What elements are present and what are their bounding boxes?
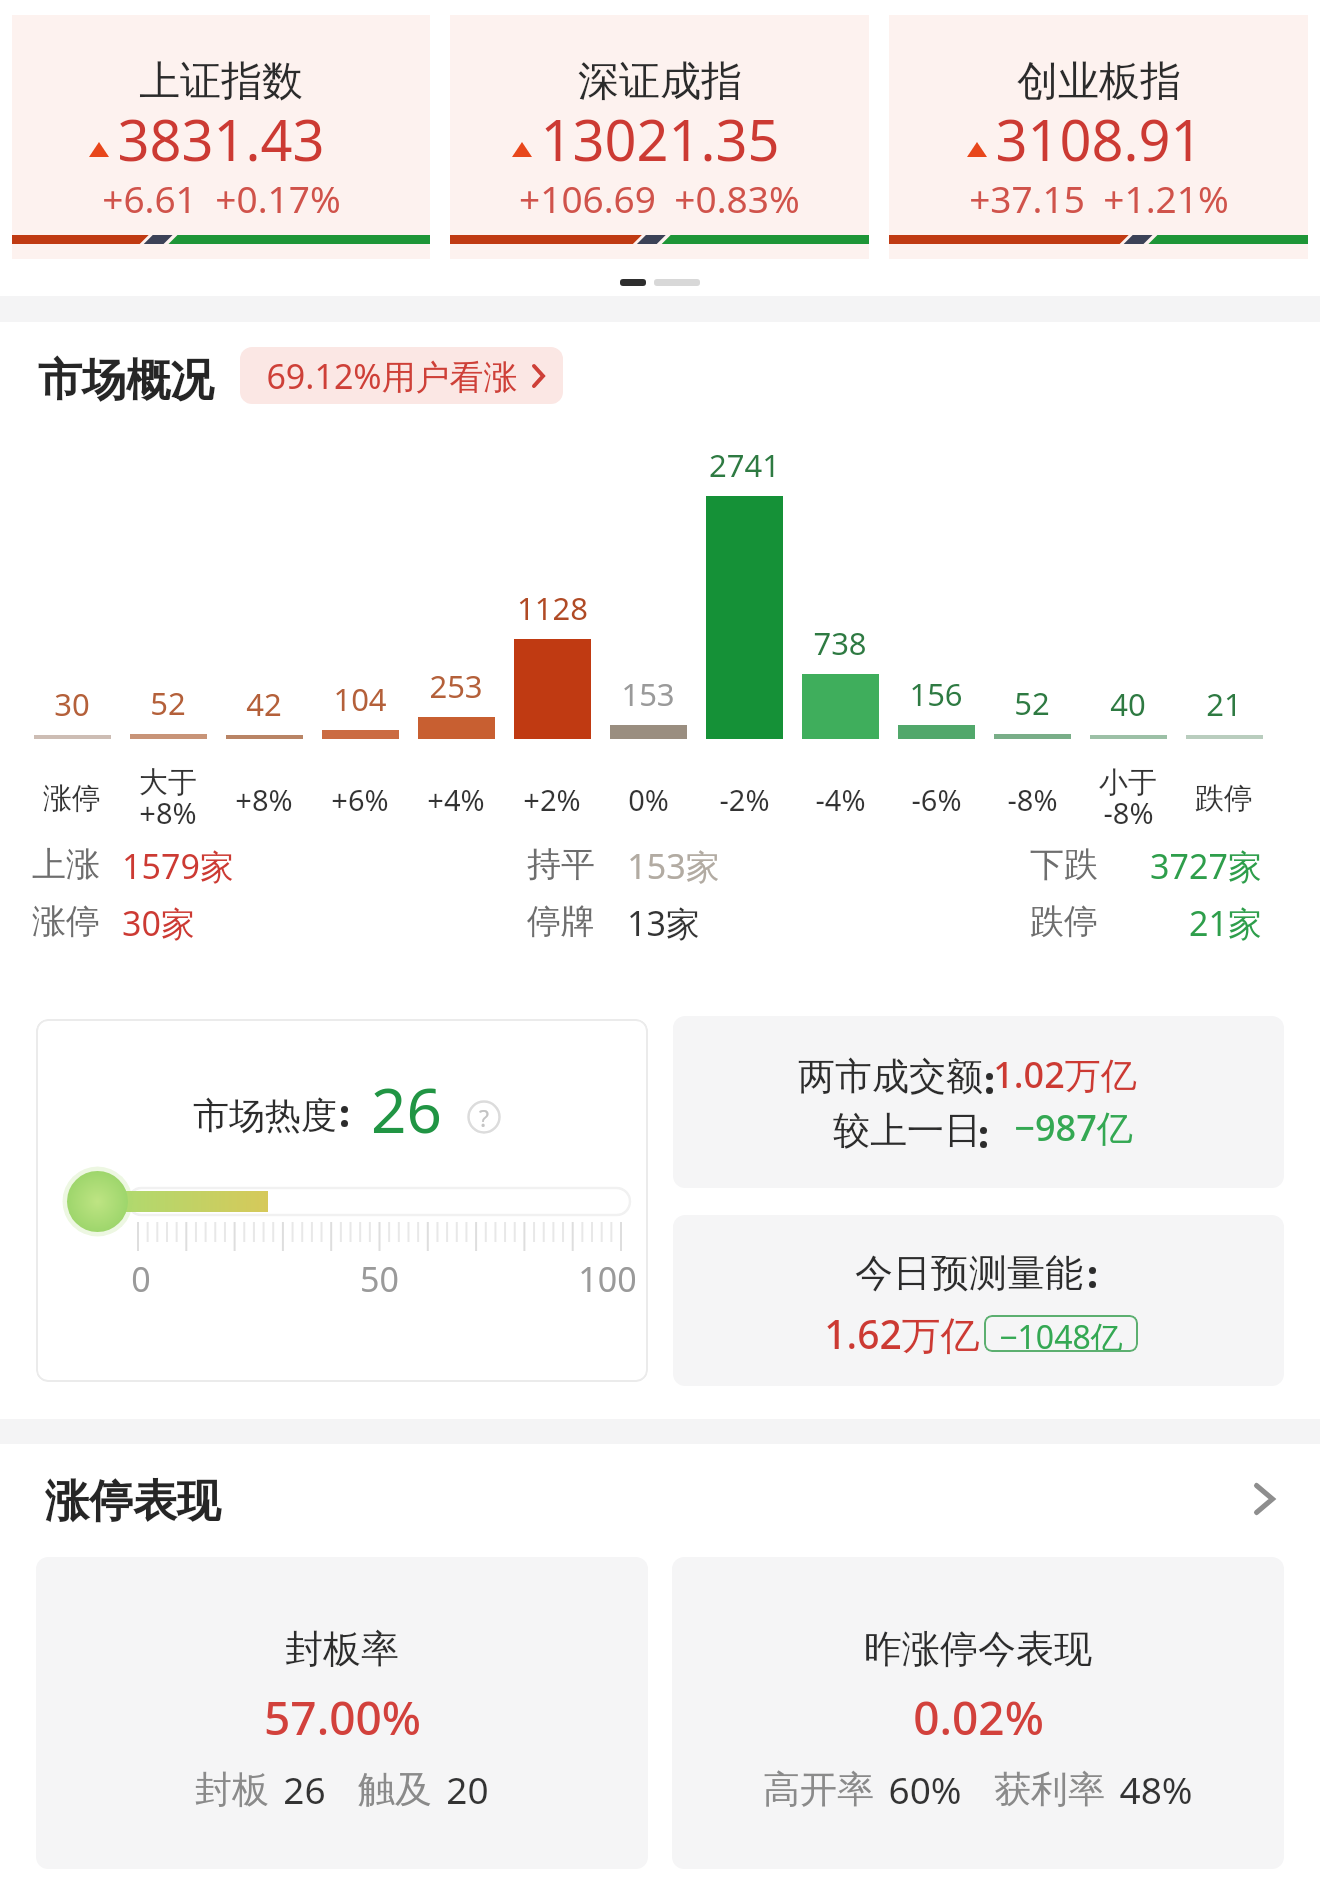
staticText: +37.15 (969, 173, 1085, 223)
staticText: 104 (333, 678, 387, 720)
staticText: 3727家 (1150, 843, 1262, 889)
staticText: −987亿 (1014, 1103, 1133, 1152)
staticText: 1.62万亿 (824, 1307, 980, 1360)
staticText: 60% (888, 1764, 962, 1814)
button[interactable]: 两市成交额 (673, 1016, 1284, 1188)
staticText: 3831.43 (117, 101, 325, 177)
staticText: 创业板指 (1017, 56, 1181, 108)
staticText: 大于 (139, 764, 197, 801)
button[interactable]: 上证指数 (12, 15, 430, 259)
staticText: 涨停表现 (45, 1474, 221, 1529)
staticText: 0% (628, 780, 669, 819)
staticText: +8% (235, 780, 293, 819)
button[interactable]: 创业板指 (889, 15, 1308, 259)
staticText: +6.61 (102, 173, 197, 223)
staticText: +2% (523, 780, 581, 819)
staticText: 跌停 (1030, 900, 1098, 943)
staticText: 2741 (709, 444, 780, 486)
button[interactable]: 深证成指 (450, 15, 869, 259)
staticText: 253 (429, 665, 483, 707)
staticText: 13021.35 (540, 101, 780, 177)
staticText: 57.00% (264, 1686, 421, 1749)
staticText: 42 (246, 683, 282, 725)
staticText: 获利率 (994, 1766, 1105, 1813)
staticText: 0 (131, 1256, 151, 1302)
staticText: -8% (1007, 780, 1058, 819)
staticText: 156 (909, 673, 963, 715)
staticText: 21 (1206, 683, 1242, 725)
button[interactable]: 昨涨停今表现 (672, 1557, 1284, 1869)
staticText: 涨停 (32, 900, 100, 943)
button[interactable]: 封板率 (36, 1557, 648, 1869)
staticText: 153家 (627, 843, 720, 889)
staticText: 高开率 (763, 1766, 874, 1813)
staticText: +0.83% (674, 173, 800, 223)
staticText: 0.02% (913, 1686, 1044, 1749)
staticText: 13家 (627, 900, 700, 946)
staticText: −1048亿 (999, 1315, 1123, 1352)
button[interactable]: 69.12%用户看涨 (240, 347, 563, 404)
button[interactable]: 查看更多涨停表现 (1232, 1467, 1296, 1531)
staticText: 48% (1119, 1764, 1193, 1814)
staticText: 3108.91 (995, 101, 1203, 177)
staticText: 52 (150, 682, 186, 724)
staticText: 21家 (1189, 900, 1262, 946)
staticText: 昨涨停今表现 (864, 1625, 1092, 1673)
staticText: 触及 (358, 1766, 432, 1813)
staticText: 持平 (527, 843, 595, 886)
staticText: ? (479, 1102, 489, 1133)
staticText: 较上一日 (833, 1107, 981, 1154)
staticText: 1128 (517, 587, 588, 629)
staticText: 两市成交额 (798, 1053, 983, 1100)
staticText: 40 (1110, 683, 1146, 725)
staticText: 738 (813, 622, 867, 664)
staticText: 1.02万亿 (993, 1050, 1137, 1099)
staticText: 30家 (122, 900, 195, 946)
staticText: 上证指数 (139, 56, 303, 108)
staticText: 26 (371, 1067, 442, 1151)
staticText: 26 (283, 1764, 326, 1814)
staticText: 20 (446, 1764, 489, 1814)
staticText: -8% (1103, 793, 1154, 832)
staticText: 100 (578, 1256, 637, 1302)
button[interactable]: 今日预测量能 (673, 1215, 1284, 1386)
staticText: +6% (331, 780, 389, 819)
staticText: 69.12%用户看涨 (266, 353, 518, 399)
staticText: 52 (1014, 682, 1050, 724)
staticText: 封板 (195, 1766, 269, 1813)
staticText: 今日预测量能 (855, 1249, 1083, 1297)
button[interactable]: 涨停表现 (0, 1450, 1320, 1550)
staticText: 小于 (1099, 764, 1157, 801)
staticText: 上涨 (32, 843, 100, 886)
staticText: 153 (621, 673, 675, 715)
staticText: +0.17% (215, 173, 341, 223)
staticText: +1.21% (1103, 173, 1229, 223)
staticText: -4% (815, 780, 866, 819)
staticText: +8% (139, 793, 197, 832)
button[interactable]: 市场热度 (36, 1019, 648, 1382)
staticText: -2% (719, 780, 770, 819)
staticText: 1579家 (122, 843, 234, 889)
staticText: 下跌 (1030, 843, 1098, 886)
staticText: +4% (427, 780, 485, 819)
staticText: 涨停 (43, 780, 101, 817)
staticText: 50 (360, 1256, 399, 1302)
staticText: 市场热度 (193, 1093, 337, 1138)
staticText: +106.69 (519, 173, 656, 223)
staticText: 跌停 (1195, 780, 1253, 817)
staticText: 30 (54, 683, 90, 725)
staticText: 市场概况 (38, 353, 214, 408)
staticText: 封板率 (285, 1625, 399, 1673)
staticText: -6% (911, 780, 962, 819)
staticText: 停牌 (527, 900, 595, 943)
staticText: 深证成指 (578, 56, 742, 108)
